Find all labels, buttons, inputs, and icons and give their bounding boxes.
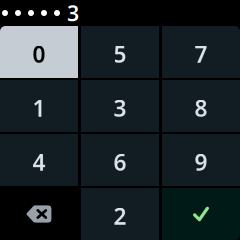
staticText: 8 [194, 93, 207, 123]
button[interactable]: 0 [0, 26, 78, 78]
staticText: 2 [113, 201, 126, 231]
button[interactable]: 4 [0, 134, 78, 186]
staticText: 9 [194, 147, 207, 177]
button[interactable]: 9 [162, 134, 240, 186]
button[interactable]: 2 [81, 188, 159, 240]
button[interactable]: 7 [162, 26, 240, 78]
button[interactable]: 6 [81, 134, 159, 186]
button[interactable]: 1 [0, 80, 78, 132]
staticText: 5 [113, 39, 126, 69]
button[interactable]: Delete [0, 188, 78, 240]
staticText: 4 [32, 147, 45, 177]
staticText: 7 [194, 39, 207, 69]
button[interactable]: 5 [81, 26, 159, 78]
button[interactable]: 8 [162, 80, 240, 132]
button[interactable]: 3 [81, 80, 159, 132]
button[interactable]: Confirm passcode [162, 188, 240, 240]
staticText: 1 [32, 93, 45, 123]
staticText: 6 [113, 147, 126, 177]
staticText: 0 [32, 39, 45, 69]
staticText: 3 [67, 0, 79, 27]
staticText: 3 [113, 93, 126, 123]
